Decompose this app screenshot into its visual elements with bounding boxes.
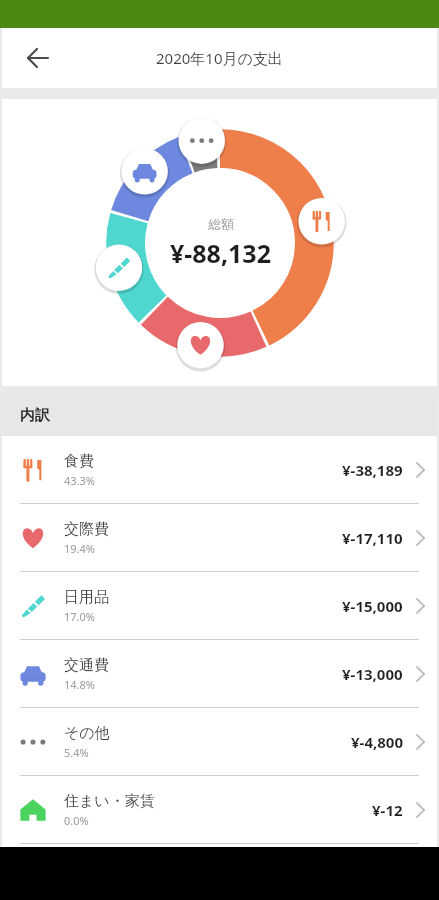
button[interactable]: 食費 bbox=[2, 436, 437, 503]
staticText: 交際費 bbox=[64, 520, 109, 539]
staticText: 14.8% bbox=[64, 677, 95, 692]
button[interactable]: 住まい・家賃 bbox=[2, 776, 437, 843]
staticText: 19.4% bbox=[64, 541, 95, 556]
staticText: 43.3% bbox=[64, 473, 95, 488]
staticText: ¥-38,189 bbox=[342, 460, 403, 480]
button[interactable]: Back bbox=[16, 36, 60, 80]
staticText: その他 bbox=[64, 724, 110, 743]
staticText: 0.0% bbox=[64, 813, 89, 828]
other: Open 日用品 bbox=[403, 572, 437, 639]
button[interactable]: 交際費 bbox=[2, 504, 437, 571]
staticText: 5.4% bbox=[64, 745, 89, 760]
staticText: ¥-13,000 bbox=[342, 664, 403, 684]
staticText: 住まい・家賃 bbox=[64, 792, 155, 811]
staticText: 総額 bbox=[208, 216, 234, 232]
staticText: ¥-4,800 bbox=[351, 732, 403, 752]
button[interactable]: その他 bbox=[2, 708, 437, 775]
staticText: ¥-88,132 bbox=[170, 236, 271, 270]
other: Open 交通費 bbox=[403, 640, 437, 707]
other: Open 交際費 bbox=[403, 504, 437, 571]
other: Open 食費 bbox=[403, 436, 437, 503]
staticText: 食費 bbox=[64, 452, 94, 471]
button[interactable]: 日用品 bbox=[2, 572, 437, 639]
staticText: ¥-12 bbox=[372, 800, 403, 820]
staticText: ¥-17,110 bbox=[342, 528, 403, 548]
other: Open その他 bbox=[403, 708, 437, 775]
staticText: 内訳 bbox=[20, 406, 50, 425]
staticText: 交通費 bbox=[64, 656, 109, 675]
staticText: ¥-15,000 bbox=[342, 596, 403, 616]
button[interactable]: 交通費 bbox=[2, 640, 437, 707]
other: Open 住まい・家賃 bbox=[403, 776, 437, 843]
staticText: 日用品 bbox=[64, 588, 109, 607]
staticText: 17.0% bbox=[64, 609, 95, 624]
staticText: 2020年10月の支出 bbox=[156, 48, 283, 68]
